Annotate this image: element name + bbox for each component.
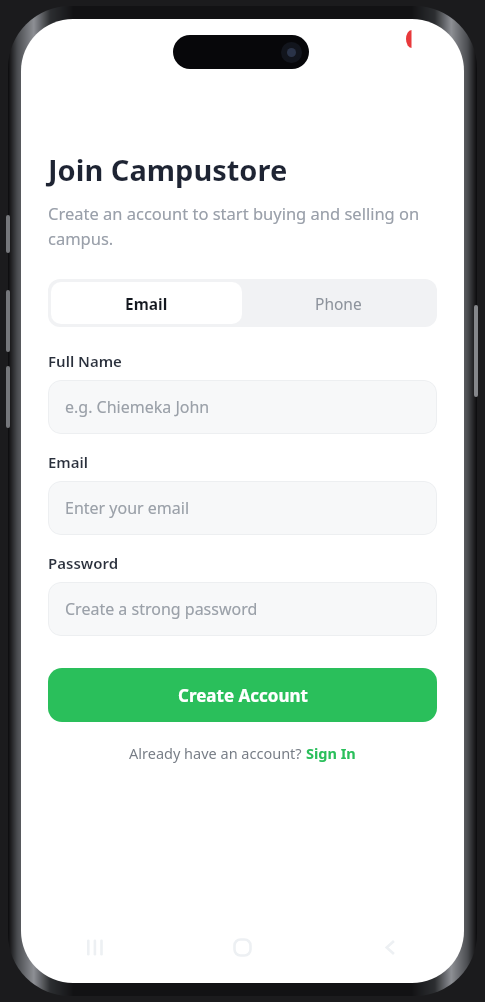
staticText: Full Name [48,351,122,371]
button[interactable]: Recent apps [21,924,168,970]
staticText: Password [48,553,119,573]
staticText: Phone [315,293,362,314]
staticText: Create an account to start buying and se… [48,202,437,249]
staticText: Create a strong password [65,598,258,620]
button[interactable]: Back [316,924,464,970]
staticText: Create Account [178,684,308,707]
button[interactable]: Create a strong password [48,582,437,636]
button[interactable]: Create Account [48,668,437,722]
staticText: Sign In [306,743,356,763]
staticText: Email [48,452,89,472]
button[interactable]: e.g. Chiemeka John [48,380,437,434]
staticText: Join Campustore [48,150,288,189]
button[interactable]: Sign In [306,743,356,763]
staticText: Email [125,293,168,314]
staticText: Enter your email [65,497,190,519]
staticText: Already have an account? [129,743,306,763]
staticText: e.g. Chiemeka John [65,396,210,418]
button[interactable]: Enter your email [48,481,437,535]
button[interactable]: Email [51,282,242,324]
button[interactable]: Phone [242,282,434,324]
